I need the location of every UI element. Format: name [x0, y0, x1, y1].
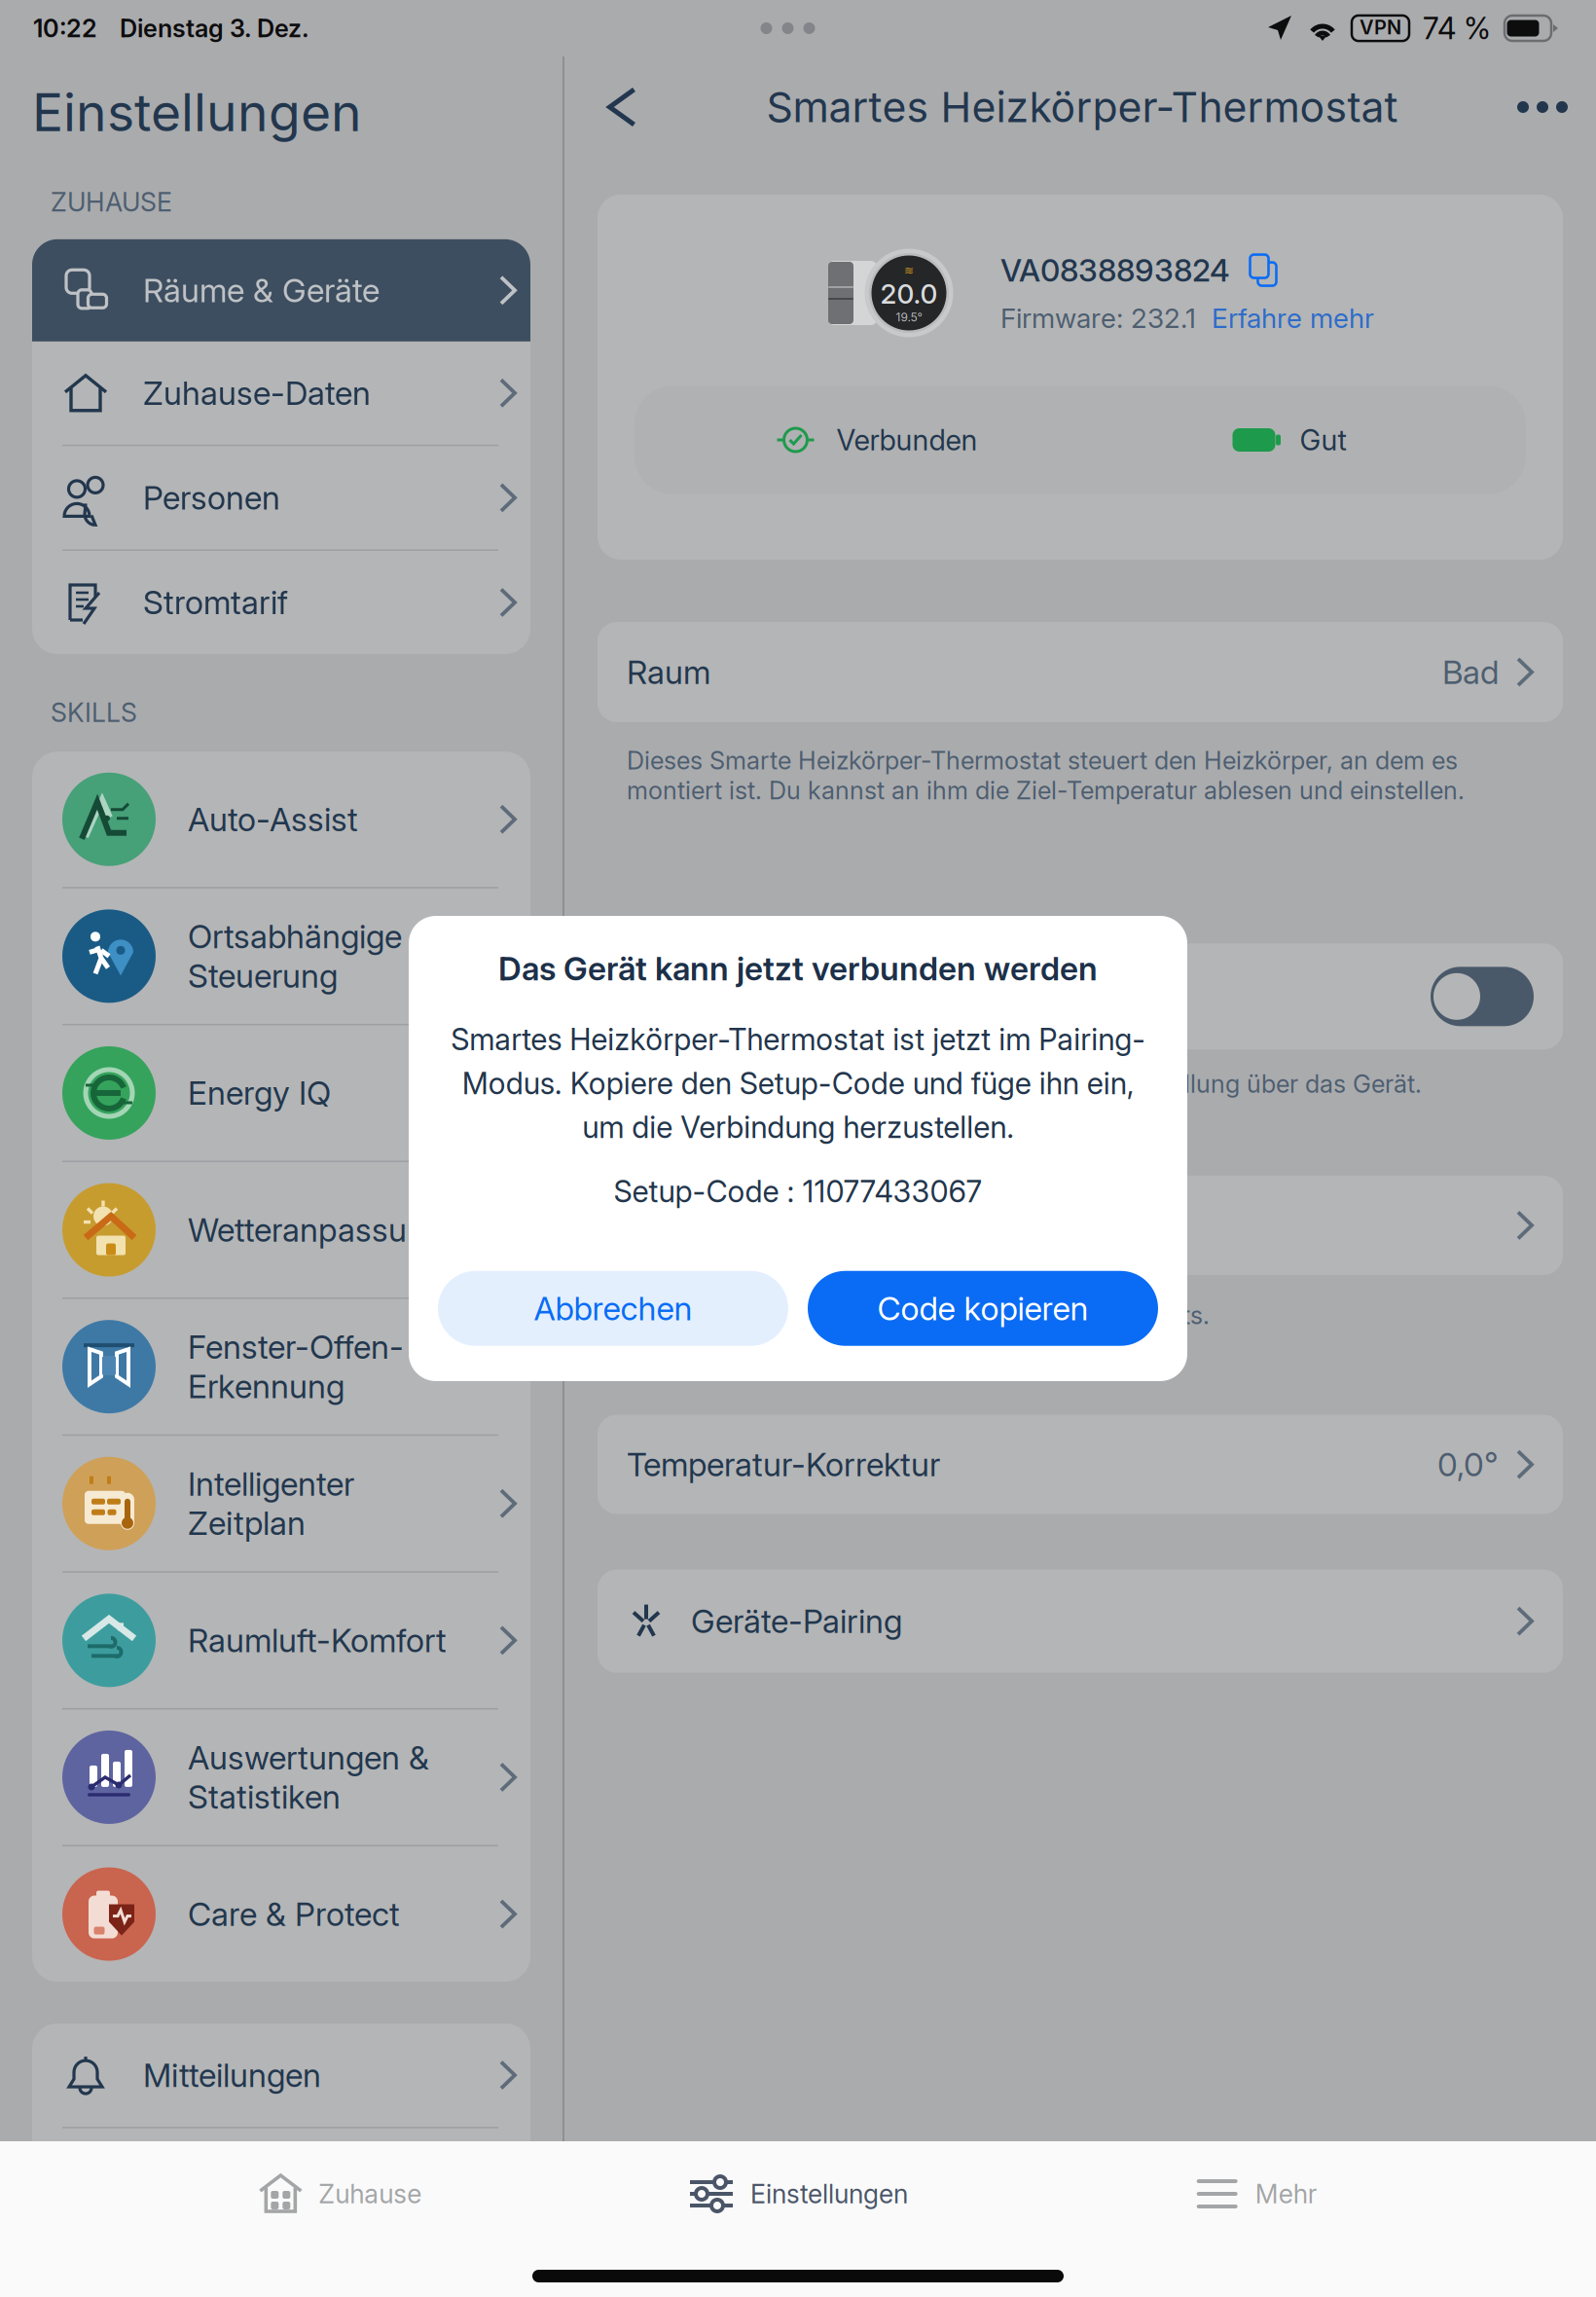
- staticText: ZUHAUSE: [51, 186, 172, 218]
- button[interactable]: Fenster-Offen- Erkennung: [32, 1299, 530, 1434]
- button[interactable]: Darstellung: [32, 2128, 530, 2231]
- button[interactable]: Energy IQ: [32, 1025, 530, 1161]
- button[interactable]: Zuhause-Daten: [32, 341, 530, 445]
- staticText: Care & Protect: [188, 1894, 400, 1934]
- button[interactable]: Ortsabhängige Steuerung: [32, 889, 530, 1024]
- staticText: Mehr: [1255, 2178, 1317, 2210]
- staticText: Das Gerät kann jetzt verbunden werden: [498, 949, 1098, 988]
- staticText: Mitteilungen: [143, 2056, 321, 2095]
- button[interactable]: Geräte-ID kopieren: [1248, 253, 1279, 288]
- button[interactable]: Raumluft-Komfort: [32, 1573, 530, 1708]
- staticText: Firmware: 232.1: [1000, 302, 1196, 335]
- staticText: Einstellungen: [32, 81, 362, 144]
- staticText: Bad: [1442, 652, 1499, 692]
- staticText: Ortsabhängige Steuerung: [188, 917, 402, 995]
- button[interactable]: Auswertungen & Statistiken: [32, 1710, 530, 1845]
- staticText: Setup-Code : 11077433067: [614, 1174, 982, 1210]
- staticText: Auswertungen & Statistiken: [188, 1738, 429, 1816]
- button[interactable]: Einstellungen: [569, 2159, 1027, 2229]
- staticText: Verbunden: [836, 423, 978, 457]
- staticText: Darstellung: [143, 2160, 307, 2199]
- staticText: Wetteranpassung: [188, 1210, 444, 1249]
- staticText: Raum: [627, 652, 710, 692]
- staticText: Raumluft-Komfort: [188, 1621, 447, 1660]
- staticText: Auto-Assist: [188, 800, 358, 839]
- staticText: ≋: [904, 264, 914, 277]
- button[interactable]: Zuhause: [111, 2159, 569, 2229]
- button[interactable]: Care & Protect: [32, 1846, 530, 1982]
- staticText: Sperrt die Bedienung sowie die Temperatu…: [627, 1069, 1422, 1099]
- button[interactable]: [598, 1176, 1563, 1275]
- staticText: Smartes Heizkörper-Thermostat: [766, 82, 1398, 132]
- staticText: Personen: [143, 478, 280, 517]
- button[interactable]: Raum: [598, 622, 1563, 722]
- staticText: Zeigt weitere Informationen zum Status d…: [627, 1300, 1210, 1330]
- button[interactable]: Mitteilungen: [32, 2024, 530, 2127]
- staticText: 0,0°: [1437, 1445, 1499, 1484]
- staticText: 10:22: [33, 13, 97, 43]
- staticText: Energy IQ: [188, 1073, 331, 1113]
- button[interactable]: Mehr Optionen: [1512, 77, 1573, 137]
- staticText: Code kopieren: [877, 1289, 1088, 1328]
- staticText: Erfahre mehr: [1212, 302, 1374, 335]
- staticText: Einstellungen: [750, 2178, 908, 2210]
- staticText: 19.5°: [896, 310, 922, 324]
- button[interactable]: Temperatur-Korrektur: [598, 1415, 1563, 1514]
- staticText: Zuhause-Daten: [143, 373, 371, 413]
- staticText: Dienstag 3. Dez.: [120, 13, 308, 43]
- staticText: Temperatur-Korrektur: [627, 1445, 940, 1484]
- button[interactable]: Intelligenter Zeitplan: [32, 1436, 530, 1571]
- staticText: VPN: [1360, 15, 1401, 39]
- button[interactable]: Auto-Assist: [32, 752, 530, 887]
- staticText: Abbrechen: [534, 1289, 692, 1328]
- staticText: Smartes Heizkörper-Thermostat ist jetzt …: [451, 1021, 1145, 1145]
- button[interactable]: Geräte-Pairing: [598, 1570, 1563, 1673]
- button[interactable]: Personen: [32, 446, 530, 549]
- staticText: Dieses Smarte Heizkörper-Thermostat steu…: [627, 746, 1465, 805]
- staticText: Räume & Geräte: [143, 271, 380, 310]
- button[interactable]: Erfahre mehr: [1212, 302, 1374, 335]
- staticText: Fenster-Offen- Erkennung: [188, 1327, 404, 1406]
- button[interactable]: Zurück: [592, 77, 652, 137]
- button[interactable]: Abbrechen: [438, 1271, 788, 1346]
- staticText: Geräte-Pairing: [691, 1601, 902, 1641]
- button[interactable]: Code kopieren: [808, 1271, 1158, 1346]
- staticText: Gut: [1300, 423, 1346, 457]
- staticText: Zuhause: [319, 2178, 422, 2210]
- staticText: Stromtarif: [143, 583, 288, 622]
- staticText: Intelligenter Zeitplan: [188, 1464, 354, 1543]
- button[interactable]: Wetteranpassung: [32, 1162, 530, 1298]
- staticText: SKILLS: [51, 697, 137, 728]
- staticText: 74 %: [1423, 10, 1491, 46]
- button[interactable]: Kindersicherung: [1431, 967, 1534, 1026]
- staticText: VA0838893824: [1000, 251, 1230, 289]
- button[interactable]: Mehr: [1027, 2159, 1485, 2229]
- staticText: 20.0: [880, 277, 938, 310]
- button[interactable]: Stromtarif: [32, 551, 530, 654]
- button[interactable]: Räume & Geräte: [32, 239, 530, 341]
